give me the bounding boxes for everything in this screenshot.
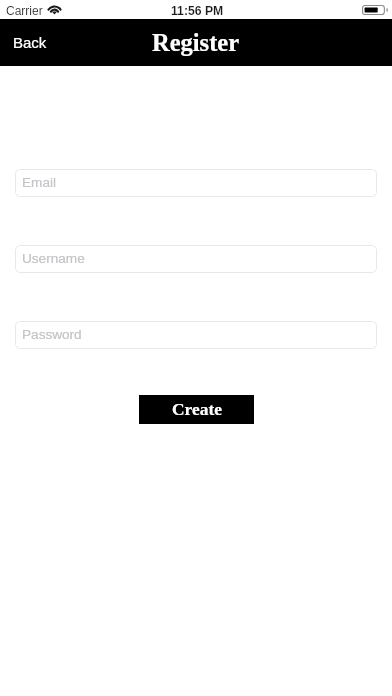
- button[interactable]: Create: [139, 395, 254, 424]
- button[interactable]: Username: [15, 245, 377, 273]
- staticText: Password: [22, 327, 82, 342]
- button[interactable]: Email: [15, 169, 377, 197]
- button[interactable]: Password: [15, 321, 377, 349]
- staticText: Username: [22, 251, 85, 266]
- other: Battery: [362, 5, 387, 15]
- staticText: 11:56 PM: [171, 4, 224, 18]
- staticText: Email: [22, 175, 56, 190]
- staticText: Register: [152, 29, 240, 56]
- staticText: Back: [13, 34, 47, 51]
- staticText: Carrier: [6, 4, 43, 17]
- button[interactable]: Back: [0, 19, 60, 66]
- other: Wi-Fi signal: [48, 5, 61, 14]
- staticText: Create: [172, 399, 222, 418]
